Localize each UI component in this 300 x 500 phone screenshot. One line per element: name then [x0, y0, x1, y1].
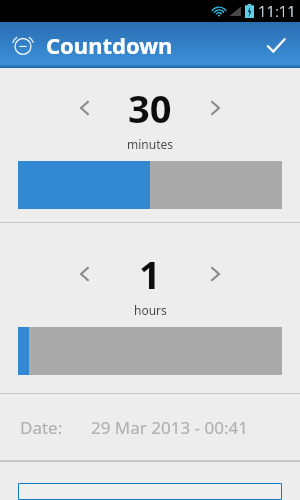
button[interactable]: Countdown [11, 30, 173, 60]
button[interactable]: Increase hours [193, 252, 237, 296]
staticText: Date: [20, 416, 63, 439]
button[interactable]: Decrease minutes [63, 86, 107, 130]
button[interactable]: Name field [18, 483, 282, 500]
button[interactable]: hours slider [18, 327, 282, 375]
button[interactable]: minutes slider [18, 161, 282, 209]
button[interactable]: Confirm [252, 22, 300, 68]
staticText: Countdown [46, 30, 173, 60]
staticText: hours [134, 302, 167, 318]
staticText: 29 Mar 2013 - 00:41 [91, 416, 248, 439]
staticText: 30 [128, 82, 172, 134]
staticText: 11:11 [258, 1, 296, 21]
staticText: 1 [139, 248, 161, 300]
button[interactable]: Date: [0, 394, 300, 460]
button[interactable]: Decrease hours [63, 252, 107, 296]
staticText: minutes [127, 136, 173, 152]
button[interactable]: Increase minutes [193, 86, 237, 130]
